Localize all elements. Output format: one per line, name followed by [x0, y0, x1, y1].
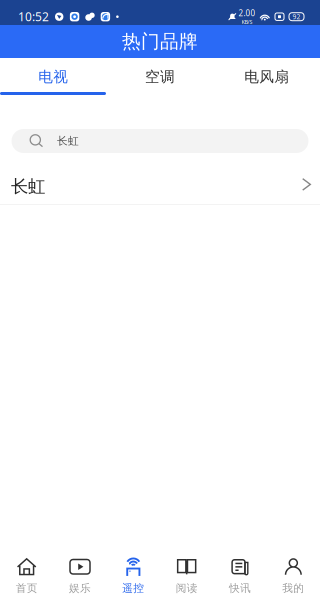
- button[interactable]: 阅读: [160, 550, 213, 600]
- staticText: 阅读: [176, 582, 198, 595]
- button[interactable]: 快讯: [213, 550, 267, 600]
- button[interactable]: 长虹: [0, 165, 320, 205]
- staticText: 长虹: [11, 176, 45, 197]
- button[interactable]: 电视: [0, 58, 107, 92]
- button[interactable]: 电风扇: [213, 58, 320, 92]
- button[interactable]: 遥控: [107, 550, 160, 600]
- staticText: 我的: [282, 582, 304, 595]
- staticText: 92: [292, 12, 300, 21]
- staticText: 10:52: [18, 9, 49, 25]
- staticText: 空调: [145, 68, 175, 86]
- staticText: 2.00: [239, 8, 256, 18]
- button[interactable]: 空调: [107, 58, 213, 92]
- staticText: 长虹: [57, 134, 79, 147]
- staticText: 首页: [16, 582, 38, 595]
- staticText: KB/S: [242, 18, 253, 26]
- staticText: 热门品牌: [122, 30, 198, 53]
- staticText: 快讯: [229, 582, 251, 595]
- button[interactable]: 首页: [0, 550, 53, 600]
- button[interactable]: 长虹: [11, 129, 308, 153]
- button[interactable]: 我的: [267, 550, 320, 600]
- staticText: 娱乐: [69, 582, 91, 595]
- staticText: 电视: [38, 68, 68, 86]
- staticText: 遥控: [122, 582, 144, 595]
- staticText: 电风扇: [244, 68, 289, 86]
- button[interactable]: 娱乐: [53, 550, 107, 600]
